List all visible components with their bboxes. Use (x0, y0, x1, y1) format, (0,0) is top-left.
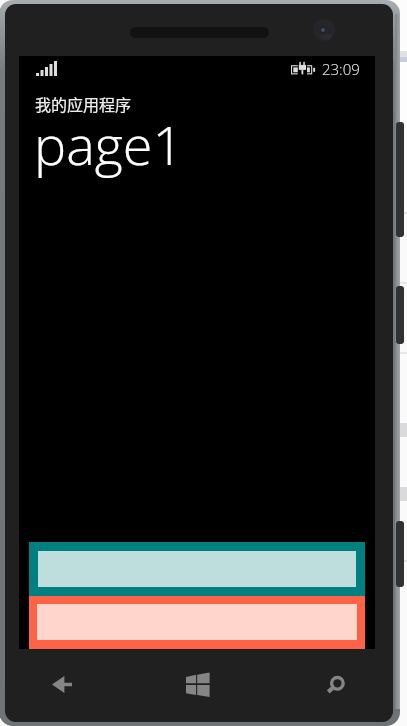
button[interactable]: Camera (396, 521, 404, 587)
staticText: page1 (34, 107, 184, 181)
button[interactable]: Search (317, 661, 355, 707)
staticText: 我的应用程序 (35, 92, 132, 115)
button[interactable]: Back (43, 661, 81, 707)
button[interactable]: Volume (396, 122, 404, 237)
button[interactable] (29, 596, 365, 649)
button[interactable]: Power (396, 286, 404, 344)
button[interactable] (29, 542, 365, 596)
button[interactable]: Start (179, 661, 217, 707)
staticText: 23:09 (322, 59, 360, 79)
